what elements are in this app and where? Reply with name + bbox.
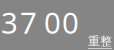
button[interactable]: 重整 [88, 34, 112, 49]
staticText: 3 [1, 3, 18, 42]
staticText: 7 [20, 3, 37, 42]
staticText: 0 [62, 3, 79, 42]
staticText: 0 [44, 3, 61, 42]
staticText: 重整 [88, 34, 112, 49]
